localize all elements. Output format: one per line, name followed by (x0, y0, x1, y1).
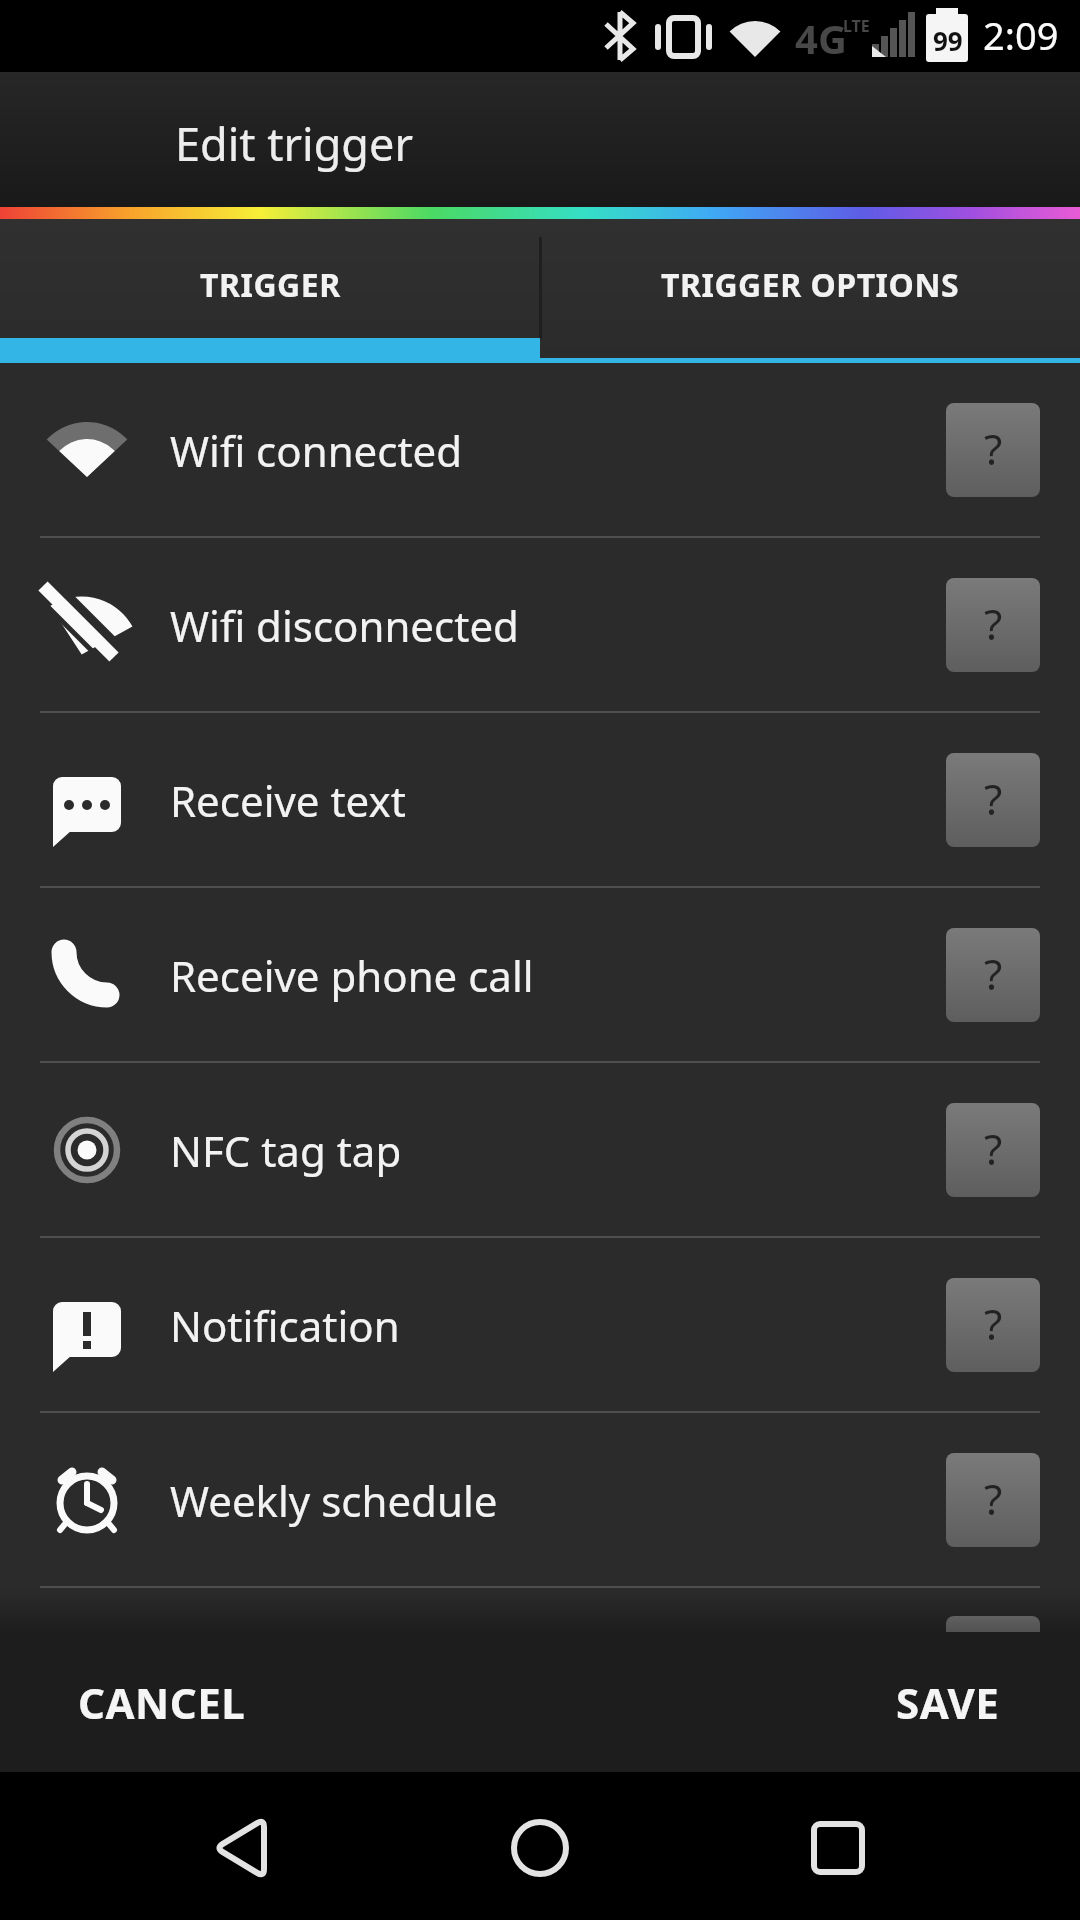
staticText: TRIGGER (200, 263, 341, 307)
staticText: Receive text (170, 772, 406, 829)
button[interactable]: ? (946, 753, 1040, 847)
staticText: ? (984, 1295, 1003, 1352)
staticText: ? (984, 770, 1003, 827)
staticText: Wifi connected (170, 422, 463, 479)
staticText: 2:09 (983, 9, 1059, 61)
button[interactable]: Receive phone call (0, 888, 1080, 1061)
button[interactable] (480, 1786, 600, 1906)
staticText: Receive phone call (170, 947, 534, 1004)
staticText: SAVE (896, 1674, 1000, 1731)
button[interactable]: ? (946, 928, 1040, 1022)
staticText: ? (984, 1120, 1003, 1177)
staticText: ? (984, 420, 1003, 477)
button[interactable]: NFC tag tap (0, 1063, 1080, 1236)
staticText: ? (984, 945, 1003, 1002)
staticText: LTE (843, 15, 870, 37)
staticText: Notification (170, 1297, 400, 1354)
staticText: 4G (795, 11, 847, 65)
button[interactable]: ? (946, 403, 1040, 497)
staticText: 99 (933, 23, 963, 58)
button[interactable]: Weekly schedule (0, 1413, 1080, 1586)
button[interactable]: ? (946, 578, 1040, 672)
button[interactable]: TRIGGER (0, 219, 540, 363)
staticText: Wifi disconnected (170, 597, 519, 654)
staticText: NFC tag tap (170, 1122, 402, 1179)
button[interactable]: Wifi disconnected (0, 538, 1080, 711)
staticText: CANCEL (78, 1674, 246, 1731)
button[interactable]: Wifi connected (0, 363, 1080, 536)
button[interactable]: ? (946, 1453, 1040, 1547)
button[interactable] (180, 1786, 300, 1906)
button[interactable]: Receive text (0, 713, 1080, 886)
staticText: TRIGGER OPTIONS (661, 263, 960, 307)
button[interactable]: ? (946, 1278, 1040, 1372)
button[interactable]: SAVE (856, 1632, 1080, 1772)
staticText: ? (984, 1470, 1003, 1527)
button[interactable]: CANCEL (0, 1632, 286, 1772)
staticText: Edit trigger (175, 113, 414, 174)
button[interactable]: ? (946, 1103, 1040, 1197)
button[interactable]: Notification (0, 1238, 1080, 1411)
button[interactable] (778, 1786, 898, 1906)
staticText: Weekly schedule (170, 1472, 498, 1529)
button[interactable]: TRIGGER OPTIONS (540, 219, 1080, 363)
staticText: ? (984, 595, 1003, 652)
